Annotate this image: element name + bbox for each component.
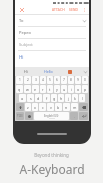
staticText: i: [71, 87, 72, 92]
button[interactable]: Hi: [15, 67, 37, 76]
staticText: 4: [42, 78, 44, 82]
button[interactable]: Enter: [79, 112, 88, 120]
staticText: Hi: [19, 54, 24, 60]
staticText: j: [68, 96, 69, 101]
staticText: 6: [56, 78, 58, 82]
staticText: English (US): [44, 114, 59, 118]
button[interactable]: Pepeo: [15, 27, 89, 38]
staticText: g: [53, 96, 56, 101]
staticText: 8: [70, 78, 72, 82]
button[interactable]: o: [75, 85, 81, 93]
staticText: SEND: [69, 8, 79, 12]
button[interactable]: l: [79, 94, 85, 102]
button[interactable]: n: [63, 103, 70, 111]
staticText: m: [73, 105, 77, 110]
button[interactable]: ATTACH: [50, 7, 67, 13]
button[interactable]: g: [51, 94, 57, 102]
button[interactable]: v: [47, 103, 54, 111]
staticText: Pepeo: [19, 30, 31, 35]
button[interactable]: To: [15, 15, 89, 26]
button[interactable]: 2: [24, 76, 31, 84]
button[interactable]: Shift: [16, 103, 24, 111]
button[interactable]: q: [16, 85, 23, 93]
button[interactable]: 6: [54, 76, 60, 84]
staticText: l: [82, 96, 83, 101]
button[interactable]: Symbols: [16, 112, 24, 120]
staticText: h: [60, 96, 63, 101]
staticText: k: [74, 96, 76, 101]
button[interactable]: p: [82, 85, 88, 93]
button[interactable]: c: [39, 103, 46, 111]
button[interactable]: Expand suggestions: [81, 67, 89, 76]
button[interactable]: Hi: [15, 51, 89, 67]
staticText: x: [34, 105, 36, 110]
staticText: d: [37, 96, 40, 101]
button[interactable]: t: [47, 85, 53, 93]
button[interactable]: 0: [82, 76, 88, 84]
button[interactable]: y: [54, 85, 60, 93]
button[interactable]: Emoji keyboard: [25, 112, 33, 120]
staticText: c: [42, 105, 44, 110]
staticText: 9: [77, 78, 79, 82]
button[interactable]: 1: [16, 76, 23, 84]
staticText: s: [30, 96, 32, 101]
staticText: .: [74, 114, 75, 119]
button[interactable]: f: [43, 94, 50, 102]
button[interactable]: d: [35, 94, 42, 102]
staticText: 5: [49, 78, 51, 82]
staticText: Subject: [19, 42, 33, 47]
button[interactable]: More options: [81, 6, 88, 13]
button[interactable]: English (US): [34, 112, 69, 120]
staticText: t: [49, 87, 51, 92]
staticText: p: [84, 87, 87, 92]
button[interactable]: b: [55, 103, 62, 111]
staticText: v: [50, 105, 52, 110]
staticText: 3: [35, 78, 37, 82]
button[interactable]: i: [68, 85, 74, 93]
button[interactable]: 7: [61, 76, 67, 84]
button[interactable]: 4: [40, 76, 46, 84]
staticText: n: [65, 105, 68, 110]
button[interactable]: a: [19, 94, 26, 102]
staticText: Beyond thinking: [34, 152, 69, 158]
button[interactable]: 5: [47, 76, 53, 84]
button[interactable]: z: [25, 103, 31, 111]
button[interactable]: e: [32, 85, 39, 93]
button[interactable]: m: [71, 103, 78, 111]
staticText: e: [34, 87, 37, 92]
button[interactable]: u: [61, 85, 67, 93]
staticText: Hello: [44, 69, 53, 74]
staticText: w: [26, 87, 29, 92]
staticText: To: [19, 18, 24, 23]
button[interactable]: j: [65, 94, 71, 102]
staticText: 7: [63, 78, 65, 82]
staticText: a: [21, 96, 24, 101]
button[interactable]: Subject: [15, 39, 89, 50]
button[interactable]: r: [40, 85, 46, 93]
button[interactable]: x: [32, 103, 38, 111]
button[interactable]: 9: [75, 76, 81, 84]
button[interactable]: 8: [68, 76, 74, 84]
button[interactable]: s: [27, 94, 34, 102]
staticText: 0: [84, 78, 86, 82]
button[interactable]: SEND: [67, 7, 81, 13]
button[interactable]: h: [58, 94, 64, 102]
staticText: Hi: [24, 69, 28, 74]
staticText: f: [46, 96, 48, 101]
button[interactable]: Hello: [37, 67, 59, 76]
staticText: z: [27, 105, 29, 110]
button[interactable]: Close: [18, 6, 25, 13]
button[interactable]: Backspace: [79, 103, 88, 111]
staticText: u: [63, 87, 66, 92]
staticText: q: [18, 87, 21, 92]
button[interactable]: Emoji suggestion: [59, 67, 81, 76]
button[interactable]: k: [72, 94, 78, 102]
staticText: ATTACH: [52, 8, 65, 12]
button[interactable]: 3: [32, 76, 39, 84]
staticText: y: [56, 87, 58, 92]
button[interactable]: w: [24, 85, 31, 93]
staticText: ?123: [17, 114, 23, 118]
staticText: 1: [19, 78, 21, 82]
staticText: o: [77, 87, 80, 92]
